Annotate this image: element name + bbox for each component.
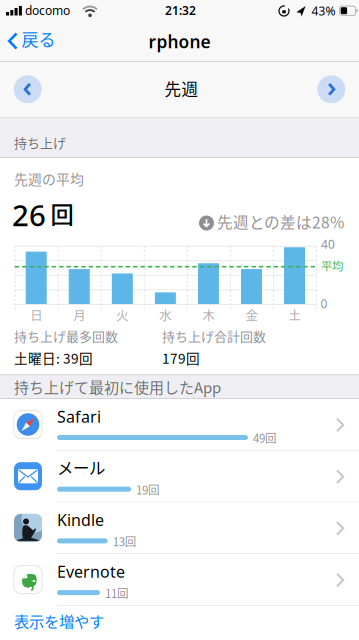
staticText: 49回 [253, 429, 276, 446]
staticText: 持ち上げ合計回数 [162, 326, 266, 345]
staticText: 金 [245, 306, 257, 324]
button[interactable]: 戻る [0, 20, 60, 62]
staticText: メール [57, 455, 105, 479]
staticText: 43% [311, 3, 335, 19]
staticText: 先週との差は28% [217, 210, 344, 233]
staticText: 日 [30, 306, 42, 324]
staticText: 月 [73, 306, 85, 324]
staticText: 持ち上げ [14, 133, 66, 152]
staticText: 11回 [105, 585, 128, 601]
staticText: 土曜日: 39回 [14, 348, 93, 368]
staticText: 40 [321, 236, 335, 252]
button[interactable]: 前の週 [14, 75, 42, 103]
staticText: Safari [57, 406, 101, 427]
staticText: 回 [50, 196, 73, 230]
staticText: 21:32 [165, 2, 196, 18]
staticText: 13回 [113, 533, 136, 549]
button[interactable]: Kindle [0, 502, 359, 554]
staticText: 土 [288, 306, 300, 324]
staticText: docomo [25, 2, 70, 18]
button[interactable]: 表示を増やす [0, 606, 359, 640]
button[interactable]: Evernote [0, 554, 359, 606]
staticText: 水 [159, 306, 171, 324]
staticText: 持ち上げ最多回数 [14, 326, 118, 345]
button[interactable]: Safari [0, 399, 359, 451]
staticText: 火 [116, 306, 128, 324]
staticText: 先週 [164, 76, 198, 100]
staticText: 表示を増やす [14, 610, 104, 632]
button[interactable]: メール [0, 451, 359, 502]
staticText: 持ち上げて最初に使用したApp [14, 376, 221, 398]
staticText: Evernote [57, 561, 125, 582]
staticText: 先週の平均 [14, 168, 84, 189]
button[interactable]: 次の週 [317, 75, 345, 103]
staticText: 戻る [21, 26, 55, 51]
staticText: Kindle [57, 509, 104, 530]
staticText: 26 [12, 195, 46, 234]
staticText: 平均 [321, 257, 343, 274]
staticText: rphone [148, 30, 210, 53]
staticText: 0 [320, 295, 327, 311]
staticText: 179回 [162, 348, 200, 368]
staticText: 木 [202, 306, 214, 324]
staticText: 19回 [136, 481, 159, 498]
